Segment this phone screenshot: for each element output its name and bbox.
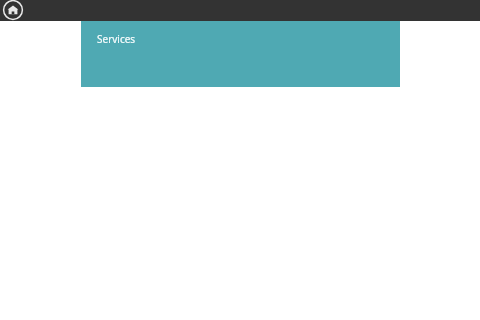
staticText: Services <box>97 32 136 46</box>
button[interactable]: Home <box>3 0 23 20</box>
button[interactable]: Services <box>81 21 400 87</box>
